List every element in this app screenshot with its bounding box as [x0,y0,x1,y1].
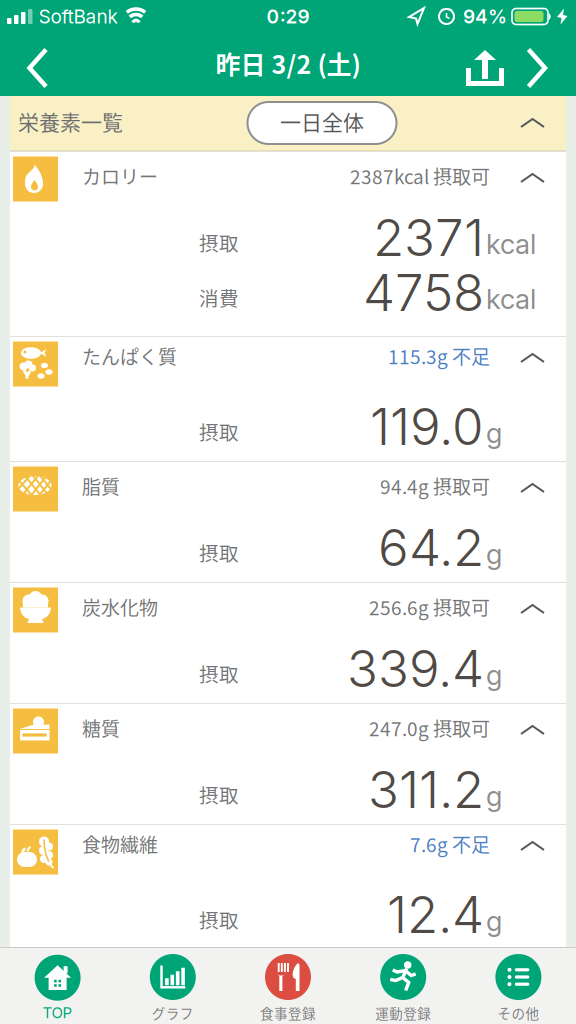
staticText: 脂質 [82,472,120,500]
staticText: 一日全体 [280,106,364,136]
staticText: 12.4 [387,884,484,945]
button[interactable]: グラフ [115,954,230,1022]
button[interactable]: 一日全体 [247,102,396,144]
button[interactable]: 前の日 [0,49,47,86]
staticText: 食物繊維 [82,830,158,858]
staticText: g [486,537,502,571]
staticText: 0:29 [266,5,309,28]
button[interactable]: カロリー [10,152,566,206]
staticText: 食事登録 [260,1003,316,1022]
staticText: 2387kcal 摂取可 [350,162,490,190]
staticText: 339.4 [347,638,484,699]
staticText: 糖質 [82,714,120,742]
staticText: kcal [486,227,536,261]
staticText: g [486,416,502,450]
staticText: 94.4g 摂取可 [380,472,490,500]
button[interactable]: 閉じる [521,118,566,127]
button[interactable]: たんぱく質 [10,337,566,391]
staticText: たんぱく質 [82,342,177,370]
staticText: 115.3g 不足 [388,342,490,370]
staticText: 消費 [199,283,239,312]
staticText: kcal [486,282,536,316]
staticText: 摂取 [199,905,239,934]
staticText: g [486,904,502,938]
staticText: 247.0g 摂取可 [369,714,490,742]
button[interactable]: TOP [0,955,115,1022]
staticText: カロリー [82,162,158,190]
button[interactable]: 食事登録 [230,954,346,1022]
staticText: グラフ [152,1003,194,1022]
button[interactable]: 炭水化物 [10,583,566,637]
staticText: TOP [43,1004,73,1022]
staticText: 炭水化物 [82,593,158,621]
button[interactable]: 次の日 [528,49,576,86]
button[interactable]: その他 [461,954,576,1022]
staticText: 摂取 [199,228,239,257]
staticText: その他 [497,1003,539,1022]
staticText: 94% [463,5,507,28]
staticText: 栄養素一覧 [18,106,123,136]
staticText: 運動登録 [375,1003,431,1022]
staticText: 摂取 [199,538,239,567]
staticText: 7.6g 不足 [410,830,490,858]
staticText: 4758 [363,262,484,323]
staticText: SoftBank [38,5,117,28]
button[interactable]: 共有 [466,50,528,86]
staticText: 摂取 [199,659,239,688]
staticText: 2371 [373,207,484,268]
staticText: g [486,779,502,813]
staticText: g [486,658,502,692]
button[interactable]: 糖質 [10,704,566,758]
button[interactable]: 運動登録 [346,954,461,1022]
staticText: 311.2 [368,759,484,820]
staticText: 119.0 [370,396,484,457]
staticText: 昨日 3/2 (土) [215,45,360,81]
staticText: 摂取 [199,780,239,809]
staticText: 摂取 [199,417,239,446]
staticText: 64.2 [378,517,484,578]
staticText: 256.6g 摂取可 [369,593,490,621]
button[interactable]: 食物繊維 [10,825,566,879]
button[interactable]: 脂質 [10,462,566,516]
